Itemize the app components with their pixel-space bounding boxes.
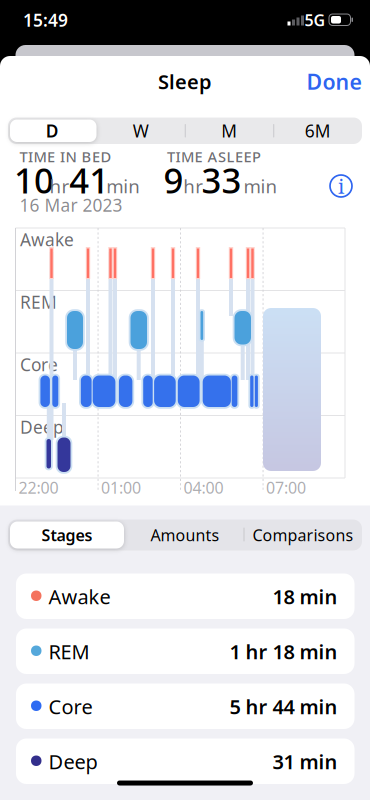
button[interactable]: D [8, 118, 96, 144]
staticText: 10 [14, 157, 54, 203]
staticText: 31 min [272, 748, 337, 775]
staticText: Amounts [150, 524, 219, 546]
staticText: Deep [48, 748, 97, 775]
staticText: 6M [305, 119, 331, 142]
staticText: 1 hr 18 min [229, 638, 337, 665]
staticText: 04:00 [183, 477, 223, 498]
staticText: M [221, 119, 237, 142]
staticText: W [133, 119, 149, 142]
staticText: i [338, 172, 344, 200]
staticText: 01:00 [101, 477, 141, 498]
staticText: REM [48, 638, 89, 665]
button[interactable]: W [97, 118, 185, 144]
staticText: REM [20, 290, 57, 313]
staticText: Core [48, 693, 92, 720]
staticText: 9 [163, 157, 183, 203]
staticText: 18 min [272, 583, 337, 610]
button[interactable]: More information [329, 174, 353, 198]
staticText: Deep [20, 415, 64, 438]
button[interactable]: M [185, 118, 273, 144]
button[interactable]: Comparisons [247, 521, 359, 549]
staticText: 15:49 [23, 8, 68, 31]
staticText: 07:00 [266, 477, 306, 498]
staticText: hr [183, 174, 203, 198]
button[interactable]: Done [304, 64, 364, 98]
staticText: TIME ASLEEP [167, 147, 261, 166]
staticText: 5G [304, 9, 325, 31]
staticText: Stages [41, 524, 92, 546]
staticText: Awake [48, 583, 110, 610]
button[interactable]: 6M [274, 118, 362, 144]
staticText: hr [49, 174, 69, 198]
staticText: 5 hr 44 min [229, 693, 337, 720]
staticText: min [106, 174, 140, 198]
staticText: Comparisons [252, 524, 353, 546]
staticText: Sleep [158, 68, 212, 95]
staticText: min [244, 174, 278, 198]
staticText: Core [20, 353, 58, 376]
staticText: 22:00 [18, 477, 58, 498]
staticText: 33 [201, 157, 241, 203]
staticText: 41 [69, 157, 109, 203]
button[interactable]: Amounts [130, 521, 240, 549]
button[interactable]: Stages [12, 521, 122, 549]
staticText: D [46, 119, 59, 142]
staticText: Done [306, 67, 361, 96]
staticText: Awake [20, 228, 74, 251]
staticText: TIME IN BED [19, 147, 111, 166]
staticText: 16 Mar 2023 [19, 193, 122, 216]
